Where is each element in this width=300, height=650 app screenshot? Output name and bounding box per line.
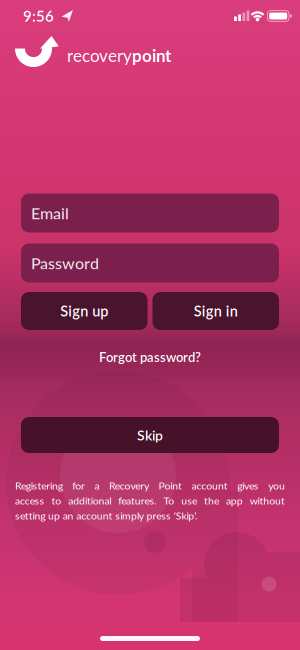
staticText: Sign up — [60, 302, 108, 320]
staticText: Registering — [15, 479, 63, 492]
button[interactable]: Forgot password? — [99, 347, 201, 367]
staticText: to — [51, 494, 61, 507]
staticText: Forgot password? — [99, 349, 201, 365]
staticText: To — [163, 494, 174, 507]
button[interactable]: Email — [21, 193, 279, 232]
button[interactable]: Sign in — [152, 292, 279, 330]
staticText: account — [191, 479, 228, 492]
staticText: Password — [31, 253, 99, 273]
staticText: additional — [68, 494, 111, 507]
staticText: recoverypoint — [67, 46, 171, 65]
button[interactable]: Skip — [21, 417, 279, 453]
staticText: Sign in — [194, 302, 238, 320]
button[interactable]: Sign up — [21, 292, 147, 330]
staticText: app — [226, 494, 243, 507]
staticText: Skip — [137, 427, 163, 443]
staticText: the — [204, 494, 219, 507]
staticText: access — [15, 494, 44, 507]
staticText: you — [268, 479, 285, 492]
staticText: setting up an account simply press ‘Skip… — [15, 509, 197, 522]
staticText: without — [250, 494, 285, 507]
staticText: Email — [31, 203, 69, 223]
staticText: 9:56 — [23, 7, 54, 25]
staticText: Recovery — [109, 479, 149, 492]
button[interactable]: Password — [21, 243, 279, 282]
staticText: for — [72, 479, 85, 492]
staticText: use — [181, 494, 197, 507]
staticText: features. — [118, 494, 156, 507]
staticText: Point — [158, 479, 182, 492]
staticText: gives — [237, 479, 259, 492]
staticText: a — [94, 479, 99, 492]
